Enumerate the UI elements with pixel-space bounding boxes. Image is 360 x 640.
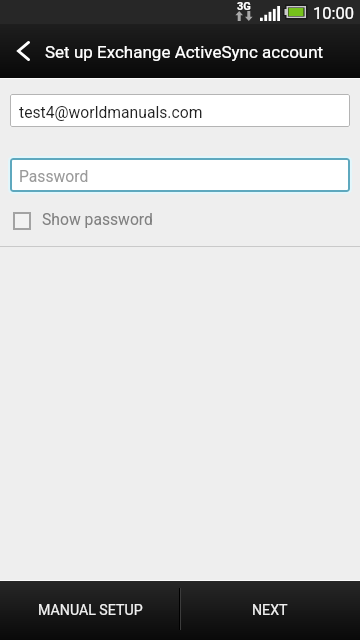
staticText: 3G [237,0,251,13]
staticText: Show password [42,210,153,228]
button[interactable]: Back [0,24,46,78]
button[interactable]: NEXT [180,581,360,640]
staticText: 10:00 [313,4,355,23]
button[interactable]: Password [10,158,350,192]
staticText: Set up Exchange ActiveSync account [45,42,324,62]
staticText: MANUAL SETUP [38,602,143,619]
button[interactable]: Show password [0,208,360,234]
staticText: NEXT [252,602,288,619]
button[interactable]: MANUAL SETUP [0,581,180,640]
button[interactable]: test4@worldmanuals.com [10,94,350,127]
staticText: Password [19,167,89,185]
staticText: test4@worldmanuals.com [19,103,203,121]
